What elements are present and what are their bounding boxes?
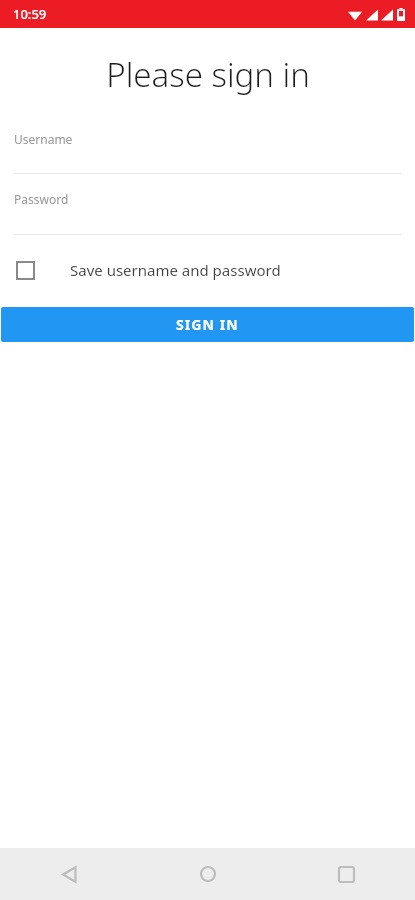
staticText: Username bbox=[14, 131, 73, 147]
button[interactable]: Save username and password bbox=[0, 250, 415, 290]
staticText: 10:59 bbox=[13, 5, 47, 23]
button[interactable]: SIGN IN bbox=[1, 307, 414, 342]
staticText: SIGN IN bbox=[176, 315, 239, 334]
button[interactable]: Recent apps bbox=[277, 848, 415, 900]
staticText: Password bbox=[14, 191, 69, 207]
button[interactable]: Back bbox=[0, 848, 139, 900]
staticText: Please sign in bbox=[106, 52, 310, 97]
staticText: Save username and password bbox=[70, 260, 281, 280]
button[interactable]: Home bbox=[139, 848, 277, 900]
